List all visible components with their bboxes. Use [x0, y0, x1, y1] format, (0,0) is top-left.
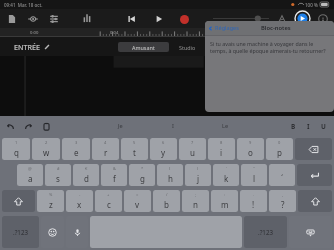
button[interactable]: Help: [317, 13, 329, 25]
button[interactable]: %: [37, 190, 64, 212]
button[interactable]: ENTRÉE: [14, 42, 50, 52]
staticText: ): [197, 166, 199, 171]
staticText: U: [321, 122, 326, 131]
button[interactable]: .: [240, 190, 267, 212]
button[interactable]: Documents: [6, 13, 18, 25]
button[interactable]: Metronome: [276, 13, 288, 25]
staticText: &: [113, 166, 116, 171]
staticText: m: [221, 199, 229, 210]
button[interactable]: Play: [153, 13, 165, 25]
button[interactable]: *: [129, 164, 155, 186]
staticText: 7: [191, 140, 194, 145]
staticText: 100 %: [305, 2, 318, 8]
button[interactable]: 3: [62, 138, 90, 160]
staticText: Réglages: [215, 24, 239, 32]
button[interactable]: 5: [121, 138, 148, 160]
button[interactable]: 7: [179, 138, 206, 160]
button[interactable]: Record: [180, 15, 189, 24]
button[interactable]: Réglages: [208, 24, 239, 32]
button[interactable]: &: [101, 164, 127, 186]
staticText: z: [49, 199, 53, 210]
button[interactable]: Amusant: [118, 42, 169, 52]
staticText: l: [253, 173, 256, 184]
button[interactable]: Rewind: [126, 13, 138, 25]
button[interactable]: Backspace: [295, 138, 332, 160]
staticText: Le: [222, 122, 229, 130]
button[interactable]: Undo: [6, 122, 15, 131]
button[interactable]: Hide keyboard: [289, 216, 332, 248]
button[interactable]: 9: [237, 138, 264, 160]
staticText: Je: [118, 122, 123, 130]
button[interactable]: €: [73, 164, 99, 186]
button[interactable]: ´: [269, 164, 295, 186]
staticText: t: [133, 147, 136, 158]
staticText: Bloc-notes: [261, 24, 291, 32]
button[interactable]: ,: [269, 190, 296, 212]
button[interactable]: Paste: [42, 122, 51, 131]
staticText: *: [141, 166, 144, 171]
button[interactable]: B: [291, 122, 296, 131]
button[interactable]: :: [211, 190, 238, 212]
button[interactable]: ": [241, 164, 267, 186]
staticText: 0:00: [30, 30, 39, 36]
staticText: u: [190, 147, 195, 158]
staticText: x: [77, 199, 82, 210]
button[interactable]: /: [153, 190, 180, 212]
button[interactable]: 1: [2, 138, 30, 160]
staticText: 2: [45, 140, 48, 145]
staticText: 9: [249, 140, 252, 145]
button[interactable]: 6: [150, 138, 177, 160]
staticText: f: [113, 173, 116, 184]
button[interactable]: Tracks: [81, 13, 93, 25]
button[interactable]: =: [124, 190, 151, 212]
button[interactable]: Shift: [2, 190, 35, 212]
button[interactable]: Dictate: [66, 216, 88, 248]
button[interactable]: Mixer: [48, 13, 60, 25]
button[interactable]: 8: [208, 138, 235, 160]
button[interactable]: 2: [32, 138, 60, 160]
staticText: d: [84, 173, 89, 184]
button[interactable]: Play button highlighted: [295, 11, 310, 26]
staticText: ,: [282, 192, 284, 197]
staticText: w: [43, 147, 50, 158]
button[interactable]: Loops: [27, 13, 39, 25]
button[interactable]: Je: [118, 122, 123, 130]
button[interactable]: (: [157, 164, 183, 186]
staticText: q: [14, 147, 19, 158]
staticText: i: [220, 147, 223, 158]
button[interactable]: 0: [266, 138, 293, 160]
button[interactable]: Shift right: [298, 190, 332, 212]
button[interactable]: +: [95, 190, 122, 212]
button[interactable]: .?123: [2, 216, 39, 248]
button[interactable]: ): [185, 164, 211, 186]
button[interactable]: I: [307, 122, 310, 131]
button[interactable]: #: [45, 164, 71, 186]
staticText: n: [193, 199, 198, 210]
staticText: k: [224, 173, 229, 184]
button[interactable]: Le: [222, 122, 229, 130]
staticText: g: [140, 173, 145, 184]
button[interactable]: Studio: [179, 44, 196, 51]
button[interactable]: [213, 13, 269, 24]
staticText: s: [56, 173, 60, 184]
button[interactable]: -: [66, 190, 93, 212]
button[interactable]: 4: [92, 138, 119, 160]
staticText: @: [28, 166, 32, 171]
button[interactable]: Emoji: [41, 216, 64, 248]
button[interactable]: U: [321, 122, 326, 131]
button[interactable]: Return: [297, 164, 332, 186]
button[interactable]: @: [17, 164, 43, 186]
staticText: #: [57, 166, 60, 171]
button[interactable]: I: [172, 122, 174, 130]
button[interactable]: .?123: [244, 216, 287, 248]
staticText: :: [224, 192, 226, 197]
staticText: y: [161, 147, 166, 158]
button[interactable]: ': [213, 164, 239, 186]
button[interactable]: Redo: [24, 122, 33, 131]
staticText: b: [164, 199, 169, 210]
staticText: ´: [281, 173, 284, 184]
staticText: %: [49, 192, 53, 197]
button[interactable]: ;: [182, 190, 209, 212]
staticText: Amusant: [132, 44, 155, 51]
